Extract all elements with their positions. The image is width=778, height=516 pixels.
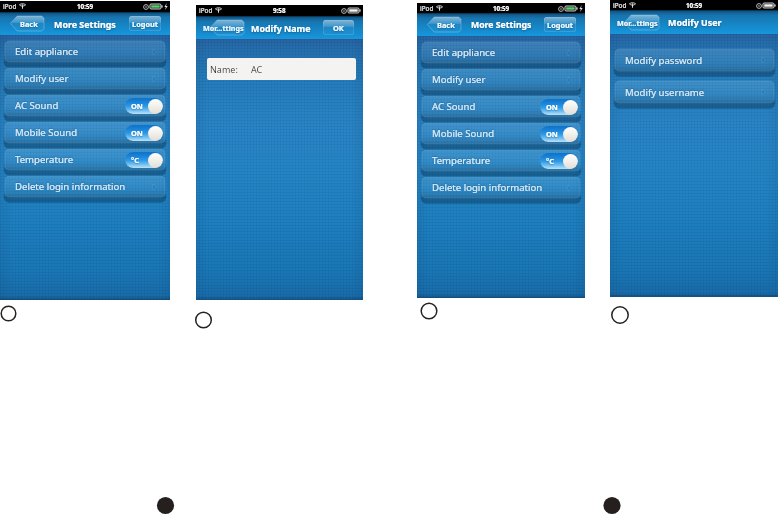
- button[interactable]: Toggle AC Sound: [125, 98, 163, 114]
- other: Open Delete login information: [153, 184, 156, 190]
- staticText: Delete login information: [15, 180, 126, 193]
- staticText: 10:59: [493, 4, 510, 13]
- button[interactable]: Edit appliance: [422, 42, 580, 63]
- staticText: Mor...ttings: [617, 18, 658, 28]
- button[interactable]: Modify user: [422, 69, 580, 90]
- staticText: ON: [131, 101, 143, 111]
- button[interactable]: Modify password: [615, 49, 774, 71]
- button[interactable]: Temperature: [5, 149, 165, 170]
- other: Open Modify user: [153, 76, 156, 82]
- staticText: Modify Name: [251, 22, 311, 34]
- button[interactable]: Mobile Sound: [422, 123, 580, 144]
- button[interactable]: Name:: [207, 58, 356, 80]
- button[interactable]: Toggle Mobile Sound: [540, 126, 578, 142]
- staticText: Back: [20, 19, 38, 29]
- staticText: Temperature: [15, 153, 74, 166]
- button[interactable]: Toggle AC Sound: [540, 99, 578, 115]
- button[interactable]: Logout: [129, 16, 161, 31]
- button[interactable]: Modify username: [615, 81, 774, 103]
- staticText: More Settings: [54, 18, 116, 30]
- staticText: Mobile Sound: [15, 126, 78, 139]
- staticText: Logout: [132, 19, 159, 29]
- staticText: Mor...ttings: [203, 23, 244, 33]
- staticText: ON: [546, 129, 558, 139]
- button[interactable]: Toggle Temperature: [540, 153, 578, 169]
- button[interactable]: Back: [10, 16, 44, 31]
- staticText: 10:59: [686, 1, 703, 10]
- staticText: 9:58: [273, 6, 286, 15]
- staticText: iPod: [420, 4, 434, 13]
- button[interactable]: Mor...ttings: [624, 15, 659, 30]
- staticText: AC Sound: [432, 100, 476, 113]
- staticText: 10:59: [77, 2, 94, 11]
- staticText: AC Sound: [15, 99, 59, 112]
- button[interactable]: Modify user: [5, 68, 165, 89]
- staticText: Back: [437, 20, 455, 30]
- staticText: Name:: [210, 63, 238, 75]
- button[interactable]: OK: [323, 20, 354, 35]
- button[interactable]: Back: [427, 17, 461, 32]
- button[interactable]: Delete login information: [422, 177, 580, 198]
- button[interactable]: AC Sound: [5, 95, 165, 116]
- staticText: °C: [131, 155, 139, 165]
- button[interactable]: AC Sound: [422, 96, 580, 117]
- button[interactable]: Mor...ttings: [210, 20, 244, 35]
- staticText: Modify username: [625, 86, 705, 99]
- staticText: ON: [131, 128, 143, 138]
- button[interactable]: Toggle Temperature: [125, 152, 163, 168]
- other: Open Delete login information: [568, 185, 571, 191]
- button[interactable]: Temperature: [422, 150, 580, 171]
- staticText: More Settings: [471, 19, 532, 31]
- staticText: AC: [251, 63, 263, 75]
- button[interactable]: Edit appliance: [5, 41, 165, 62]
- staticText: ON: [546, 102, 558, 112]
- staticText: iPod: [613, 1, 627, 10]
- other: Open Edit appliance: [568, 50, 571, 56]
- button[interactable]: Logout: [544, 17, 576, 32]
- staticText: Modify user: [432, 73, 486, 86]
- button[interactable]: Mobile Sound: [5, 122, 165, 143]
- other: Open Edit appliance: [153, 49, 156, 55]
- button[interactable]: Toggle Mobile Sound: [125, 125, 163, 141]
- staticText: Logout: [547, 20, 574, 30]
- staticText: Modify user: [15, 72, 69, 85]
- staticText: Edit appliance: [15, 45, 79, 58]
- other: Open Modify username: [762, 89, 765, 95]
- button[interactable]: Delete login information: [5, 176, 165, 197]
- staticText: Mobile Sound: [432, 127, 495, 140]
- other: Open Modify user: [568, 77, 571, 83]
- staticText: Temperature: [432, 154, 491, 167]
- staticText: Modify User: [668, 16, 722, 28]
- staticText: OK: [333, 23, 344, 33]
- other: Open Modify password: [762, 57, 765, 63]
- staticText: °C: [546, 156, 554, 166]
- staticText: Modify password: [625, 54, 703, 67]
- staticText: Edit appliance: [432, 46, 496, 59]
- staticText: iPod: [199, 6, 213, 15]
- staticText: Delete login information: [432, 181, 543, 194]
- staticText: iPod: [3, 2, 17, 11]
